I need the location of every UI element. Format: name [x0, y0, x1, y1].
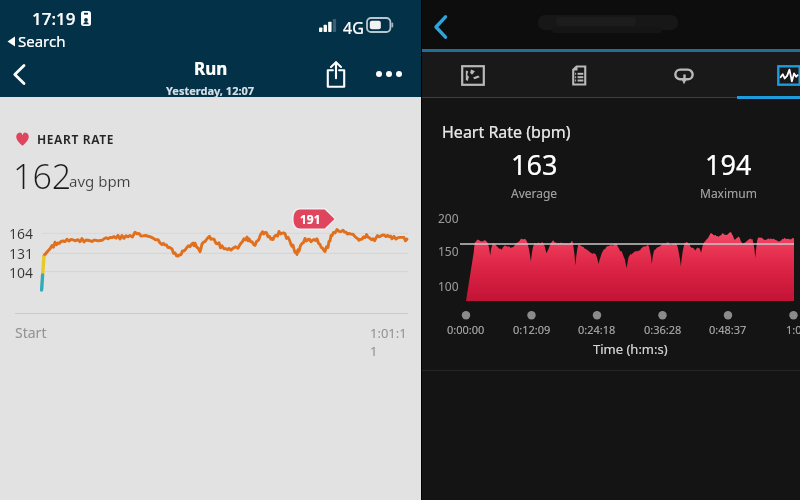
button[interactable]: More options [369, 54, 409, 94]
button[interactable]: Details [553, 52, 605, 98]
staticText: Run [194, 57, 228, 80]
staticText: Average [511, 185, 558, 201]
staticText: 0:12:09 [513, 322, 551, 337]
staticText: 0:00:00 [447, 322, 485, 337]
staticText: 104 [9, 263, 34, 282]
staticText: 0:24:18 [578, 322, 616, 337]
staticText: 100 [438, 278, 459, 294]
staticText: 0:48:37 [709, 322, 747, 337]
staticText: 194 [705, 146, 752, 183]
staticText: 150 [438, 243, 459, 259]
staticText: 131 [9, 244, 34, 263]
button[interactable]: Heart rate [763, 52, 800, 98]
button[interactable]: Share [316, 54, 356, 94]
staticText: Search [18, 31, 66, 51]
staticText: Yesterday, 12:07 [166, 83, 255, 98]
staticText: 191 [300, 211, 321, 227]
staticText: 4G [343, 17, 364, 39]
button[interactable]: Laps [658, 52, 710, 98]
staticText: avg bpm [69, 171, 131, 191]
staticText: Time (h:m:s) [593, 340, 668, 358]
staticText: HEART RATE [37, 131, 115, 147]
button[interactable]: Back [0, 54, 38, 95]
staticText: 164 [9, 224, 34, 243]
staticText: 0:36:28 [644, 322, 682, 337]
button[interactable]: Map [447, 52, 499, 98]
staticText: Maximum [700, 185, 757, 201]
staticText: 200 [438, 210, 459, 226]
staticText: 163 [511, 146, 558, 183]
staticText: Start [15, 323, 47, 342]
button[interactable]: Back [422, 5, 458, 48]
staticText: 162 [13, 153, 72, 199]
staticText: 17:19 [32, 7, 76, 30]
staticText: 1:01:11 [370, 324, 408, 360]
staticText: 1:00 [786, 322, 800, 337]
staticText: Heart Rate (bpm) [442, 121, 571, 143]
